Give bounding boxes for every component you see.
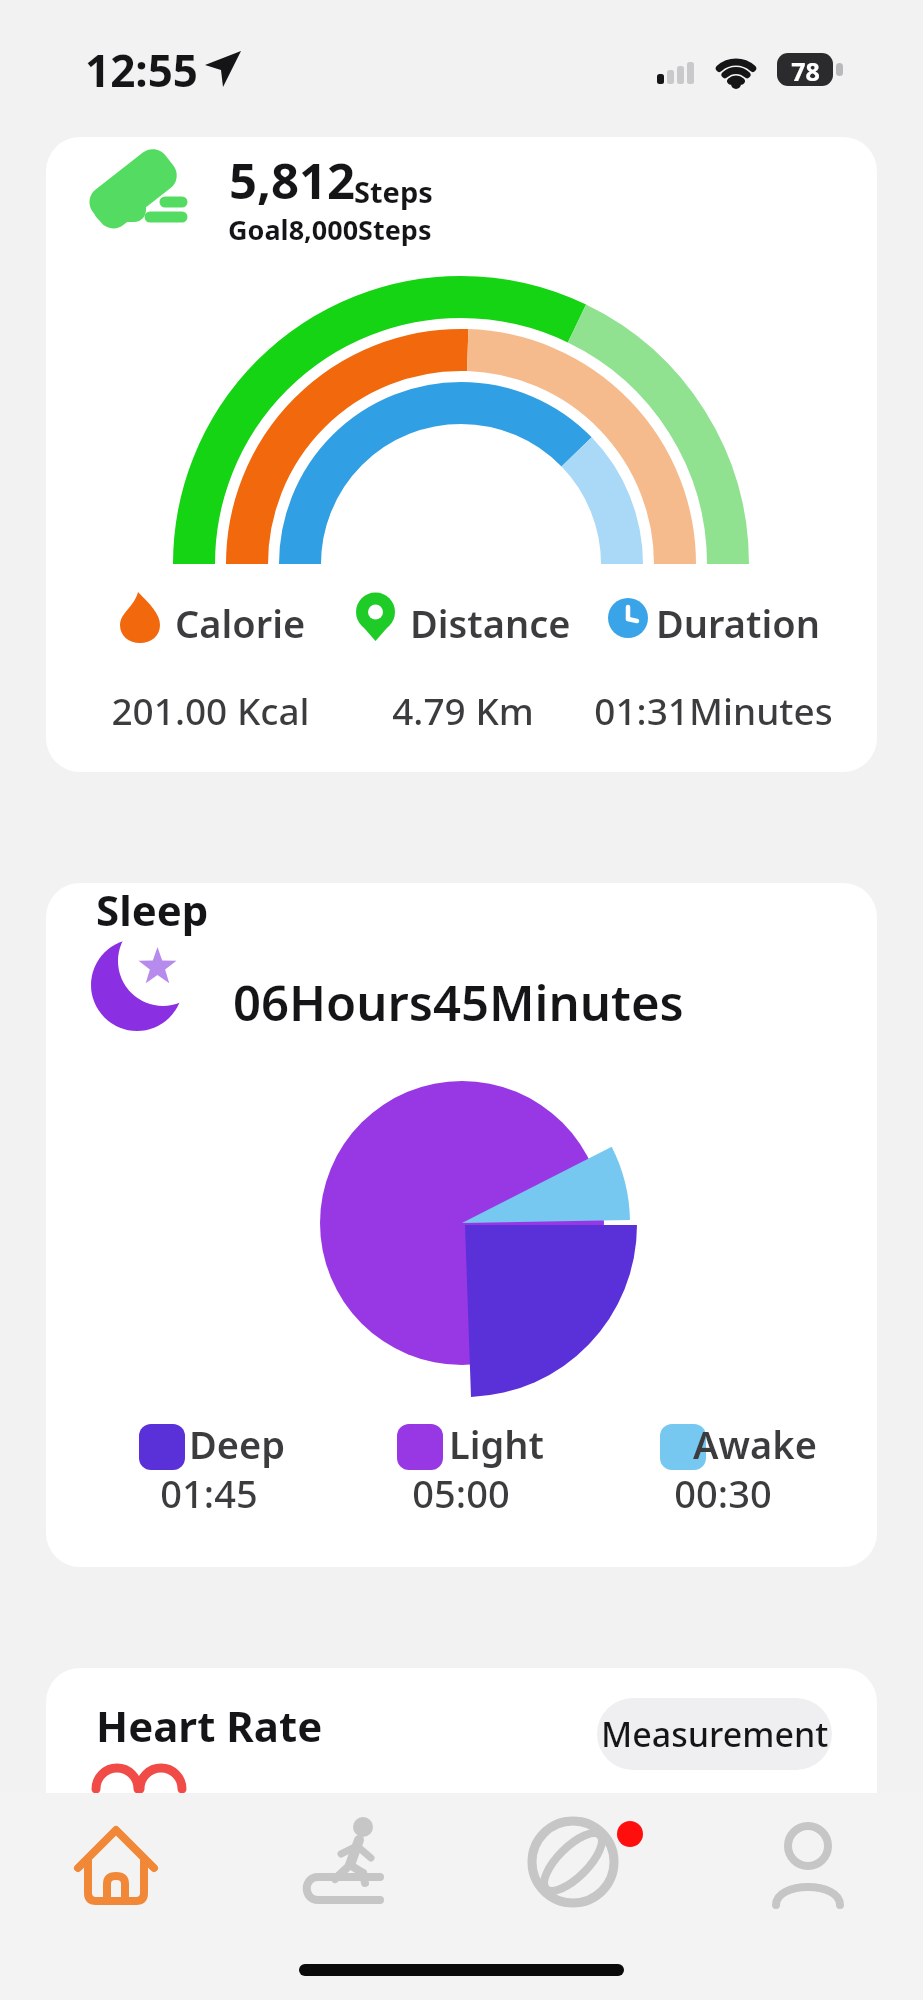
staticText: 06Hours45Minutes — [233, 969, 684, 1036]
button[interactable]: Sleep — [46, 883, 877, 1567]
staticText: 05:00 — [412, 1467, 510, 1519]
button[interactable] — [40, 1808, 195, 1928]
button[interactable] — [730, 1808, 885, 1928]
button[interactable] — [500, 1808, 655, 1928]
staticText: 4.79 Km — [392, 685, 534, 735]
staticText: Calorie — [175, 597, 306, 649]
staticText: 201.00 Kcal — [111, 685, 310, 735]
staticText: 5,812 — [229, 147, 356, 214]
button[interactable]: Measurement — [597, 1698, 832, 1770]
staticText: Steps — [354, 172, 433, 211]
staticText: 00:30 — [674, 1467, 772, 1519]
button[interactable] — [270, 1808, 425, 1928]
staticText: Duration — [656, 597, 820, 649]
button[interactable]: 5,812 — [46, 137, 877, 772]
staticText: Measurement — [601, 1711, 829, 1757]
staticText: 12:55 — [85, 40, 199, 100]
staticText: Heart Rate — [96, 1697, 323, 1754]
staticText: Deep — [189, 1418, 286, 1470]
staticText: Goal8,000Steps — [228, 211, 432, 248]
staticText: Awake — [693, 1418, 817, 1470]
staticText: 78 — [791, 54, 820, 88]
staticText: Sleep — [96, 883, 209, 938]
staticText: Distance — [410, 597, 571, 649]
staticText: 01:45 — [160, 1467, 258, 1519]
staticText: Light — [449, 1418, 544, 1470]
staticText: 01:31Minutes — [594, 685, 833, 735]
